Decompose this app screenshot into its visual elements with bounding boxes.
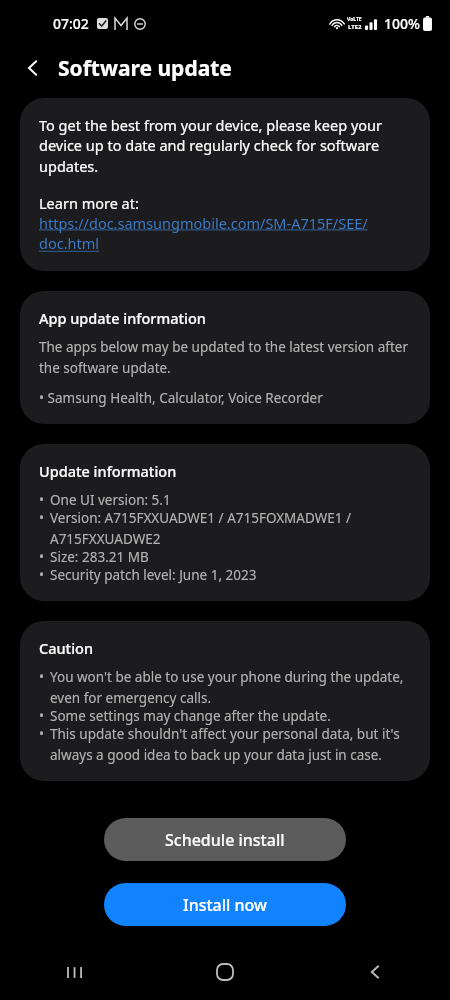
button[interactable]: Back [16, 51, 50, 85]
staticText: VoLTE [347, 16, 362, 23]
button[interactable]: Back [300, 954, 450, 990]
staticText: https://doc.samsungmobile.com/SM-A715F/S… [39, 213, 411, 254]
staticText: • Samsung Health, Calculator, Voice Reco… [39, 389, 323, 407]
button[interactable]: https://doc.samsungmobile.com/SM-A715F/S… [39, 213, 411, 254]
staticText: Update information [39, 461, 177, 481]
staticText: Security patch level: June 1, 2023 [50, 566, 257, 584]
staticText: Size: 283.21 MB [50, 548, 149, 566]
staticText: Some settings may change after the updat… [50, 707, 331, 725]
button[interactable]: Schedule install [104, 818, 346, 861]
staticText: • [39, 566, 45, 584]
staticText: 100% [384, 14, 420, 33]
staticText: Software update [58, 54, 232, 83]
staticText: • [39, 707, 45, 725]
staticText: Schedule install [165, 829, 285, 851]
button[interactable]: Recent apps [0, 954, 150, 990]
staticText: You won't be able to use your phone duri… [50, 668, 411, 707]
staticText: • [39, 725, 45, 743]
staticText: • [39, 668, 45, 686]
staticText: Learn more at: [39, 193, 139, 213]
staticText: Install now [183, 894, 267, 916]
button[interactable]: Home [150, 954, 300, 990]
staticText: One UI version: 5.1 [50, 491, 171, 509]
staticText: Caution [39, 638, 94, 658]
button[interactable]: Install now [104, 883, 346, 926]
staticText: • [39, 491, 45, 509]
staticText: LTE2 [348, 23, 362, 31]
staticText: To get the best from your device, please… [39, 115, 411, 177]
staticText: App update information [39, 308, 206, 328]
staticText: This update shouldn't affect your person… [50, 725, 411, 764]
staticText: The apps below may be updated to the lat… [39, 338, 411, 377]
staticText: 07:02 [53, 14, 89, 33]
staticText: Version: A715FXXUADWE1 / A715FOXMADWE1 /… [50, 509, 411, 548]
staticText: • [39, 509, 45, 527]
staticText: • [39, 548, 45, 566]
